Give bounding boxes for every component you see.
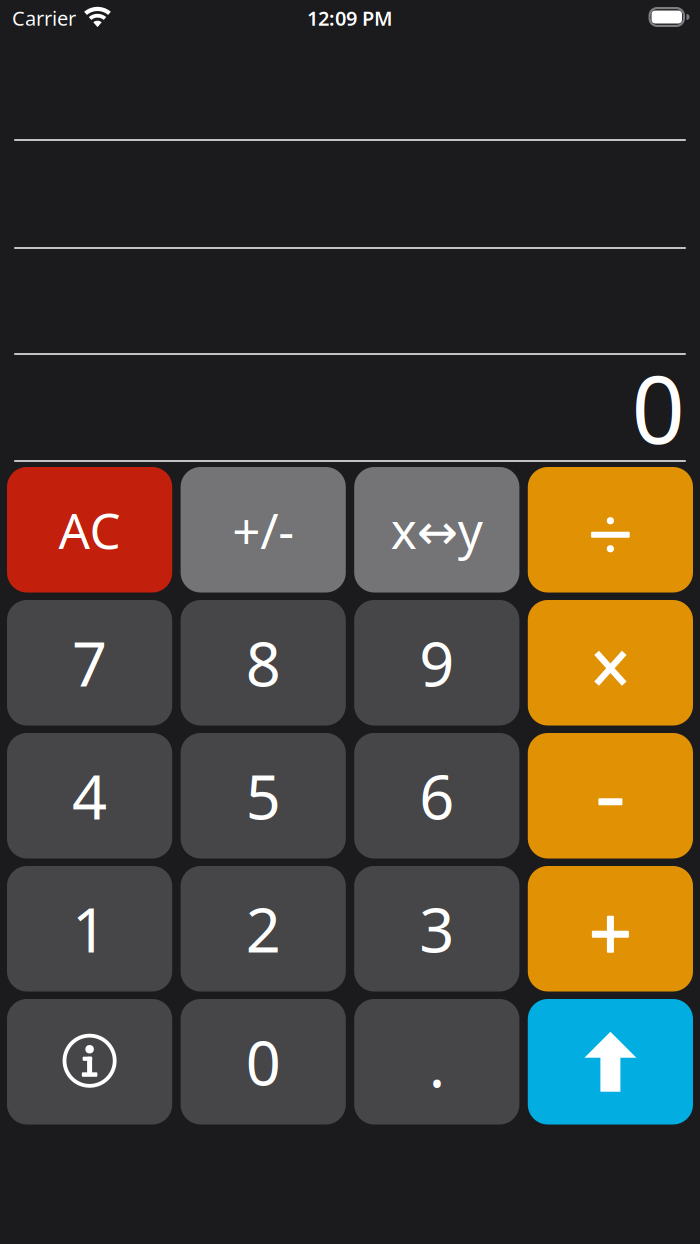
staticText: 4 <box>72 755 107 836</box>
button[interactable]: 0 <box>181 999 346 1124</box>
staticText: +/- <box>232 497 294 562</box>
staticText: 12:09 PM <box>307 5 393 31</box>
staticText: 0 <box>631 345 684 469</box>
button[interactable]: 3 <box>354 866 519 991</box>
staticText: AC <box>59 497 121 562</box>
button[interactable]: . <box>354 999 519 1124</box>
button[interactable]: 9 <box>354 600 519 725</box>
staticText: 5 <box>246 755 281 836</box>
button[interactable]: Divide <box>528 467 693 592</box>
staticText: 9 <box>419 622 454 703</box>
staticText: . <box>429 1023 445 1104</box>
button[interactable]: 6 <box>354 733 519 858</box>
staticText: 0 <box>246 1021 281 1102</box>
button[interactable]: 7 <box>7 600 172 725</box>
button[interactable]: Add <box>528 866 693 991</box>
staticText: Carrier <box>12 5 76 31</box>
staticText: 2 <box>246 888 281 969</box>
button[interactable]: Subtract <box>528 733 693 858</box>
staticText: 7 <box>72 622 107 703</box>
button[interactable]: +/- <box>181 467 346 592</box>
button[interactable]: 8 <box>181 600 346 725</box>
button[interactable]: 4 <box>7 733 172 858</box>
button[interactable]: 5 <box>181 733 346 858</box>
button[interactable]: 2 <box>181 866 346 991</box>
button[interactable]: 1 <box>7 866 172 991</box>
staticText: 6 <box>419 755 454 836</box>
button[interactable]: Enter <box>528 999 693 1124</box>
staticText: 1 <box>72 888 107 969</box>
staticText: x↔y <box>391 497 483 562</box>
staticText: 8 <box>246 622 281 703</box>
staticText: 3 <box>419 888 454 969</box>
button[interactable]: x↔y <box>354 467 519 592</box>
button[interactable]: Info <box>7 999 172 1124</box>
button[interactable]: Multiply <box>528 600 693 725</box>
button[interactable]: AC <box>7 467 172 592</box>
